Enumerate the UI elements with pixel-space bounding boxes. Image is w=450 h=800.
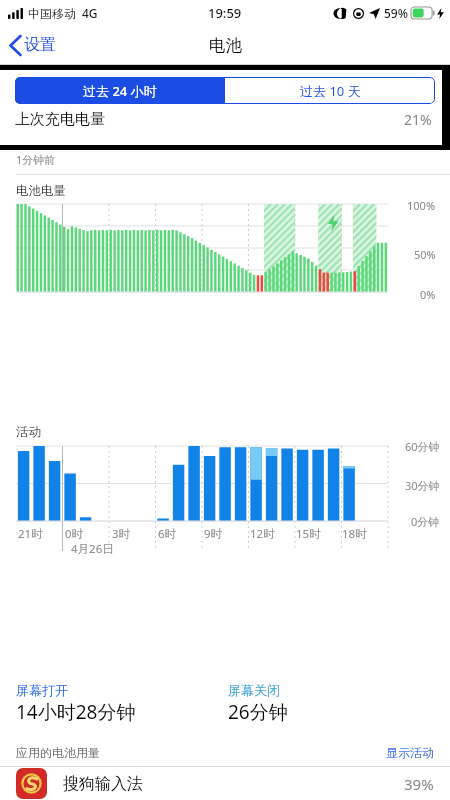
staticText: 显示活动 xyxy=(386,745,434,760)
button[interactable]: 过去 24 小时 xyxy=(15,77,225,104)
staticText: 应用的电池用量 xyxy=(16,745,100,760)
staticText: 4月26日 xyxy=(71,541,114,557)
staticText: 上次充电电量 xyxy=(15,110,105,129)
staticText: 21% xyxy=(404,110,432,129)
staticText: 14小时28分钟 xyxy=(16,699,136,725)
staticText: 39% xyxy=(404,774,434,794)
staticText: 15时 xyxy=(296,526,321,542)
staticText: 活动 xyxy=(16,424,41,440)
button[interactable]: 设置 xyxy=(10,31,64,59)
staticText: 12时 xyxy=(250,526,275,542)
staticText: 18时 xyxy=(342,526,367,542)
staticText: 屏幕打开 xyxy=(16,682,68,698)
staticText: 0时 xyxy=(65,526,84,542)
staticText: 19:59 xyxy=(208,4,242,22)
staticText: 50% xyxy=(414,247,436,262)
button[interactable]: 过去 10 天 xyxy=(225,77,435,104)
staticText: 1分钟前 xyxy=(16,152,56,167)
staticText: 屏幕关闭 xyxy=(228,682,280,698)
staticText: 6时 xyxy=(158,526,177,542)
staticText: 21时 xyxy=(18,526,43,542)
staticText: 设置 xyxy=(24,35,56,55)
staticText: 中国移动 xyxy=(28,6,76,21)
staticText: 搜狗输入法 xyxy=(63,774,143,794)
staticText: 0% xyxy=(420,287,436,302)
staticText: 电池电量 xyxy=(16,183,66,199)
staticText: 59% xyxy=(384,5,408,21)
button[interactable]: 搜狗输入法 xyxy=(0,767,450,800)
staticText: 60分钟 xyxy=(405,439,440,454)
staticText: 9时 xyxy=(204,526,223,542)
staticText: 3时 xyxy=(112,526,131,542)
staticText: 4G xyxy=(82,5,98,21)
button[interactable]: 显示活动 xyxy=(386,745,434,760)
staticText: 30分钟 xyxy=(405,478,440,493)
staticText: 26分钟 xyxy=(228,699,288,725)
staticText: 过去 24 小时 xyxy=(83,82,157,100)
staticText: 过去 10 天 xyxy=(300,82,361,100)
staticText: 电池 xyxy=(209,35,242,56)
staticText: 0分钟 xyxy=(411,514,440,529)
staticText: 100% xyxy=(407,198,436,213)
